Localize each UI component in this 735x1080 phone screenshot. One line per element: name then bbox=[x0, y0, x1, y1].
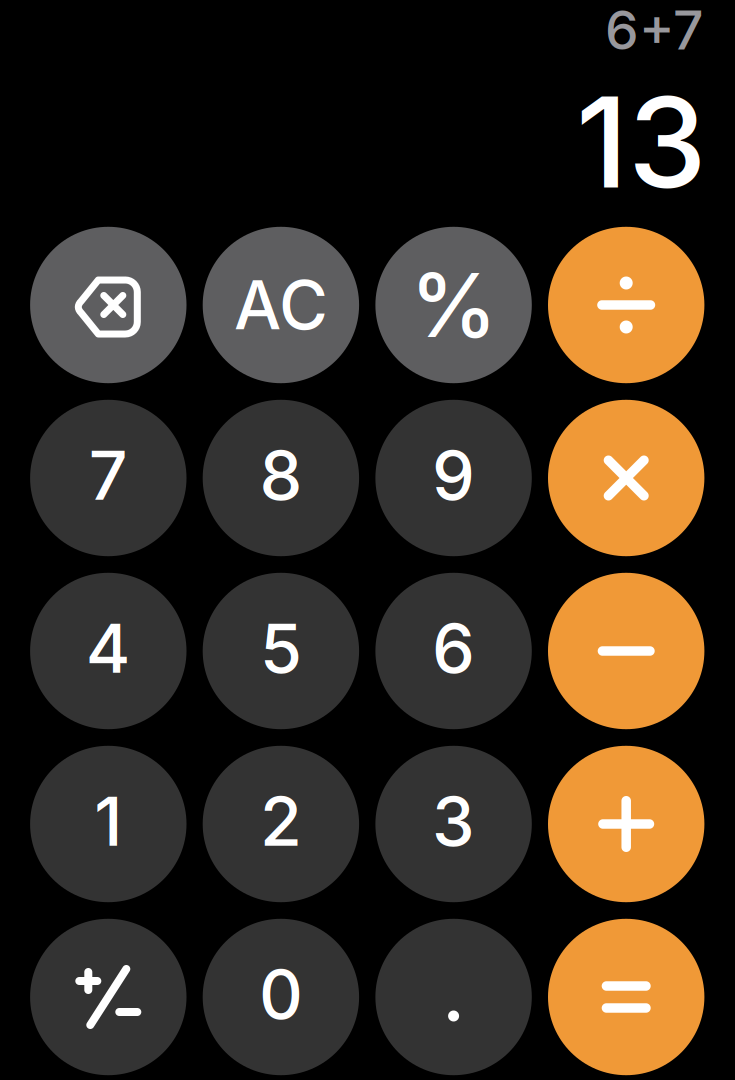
staticText: % bbox=[410, 252, 497, 358]
staticText: 13 bbox=[576, 66, 707, 218]
staticText: AC bbox=[234, 265, 328, 345]
button[interactable]: 7 bbox=[30, 400, 186, 556]
staticText: 1 bbox=[94, 780, 122, 862]
button[interactable]: Decimal point bbox=[375, 919, 532, 1075]
button[interactable]: 5 bbox=[203, 573, 359, 729]
staticText: 5 bbox=[260, 607, 302, 689]
staticText: 3 bbox=[432, 780, 475, 862]
staticText: 6+7 bbox=[605, 0, 703, 62]
button[interactable]: 8 bbox=[203, 400, 359, 556]
button[interactable]: Multiply bbox=[548, 400, 704, 556]
staticText: 8 bbox=[259, 434, 302, 516]
button[interactable]: 0 bbox=[203, 919, 359, 1075]
button[interactable]: % bbox=[375, 227, 532, 383]
button[interactable]: 6 bbox=[375, 573, 532, 729]
button[interactable]: Plus bbox=[548, 746, 704, 902]
button[interactable]: Divide bbox=[548, 227, 704, 383]
button[interactable]: AC bbox=[203, 227, 359, 383]
staticText: 9 bbox=[432, 434, 475, 516]
staticText: 2 bbox=[260, 780, 302, 862]
button[interactable]: Minus bbox=[548, 573, 704, 729]
button[interactable]: 2 bbox=[203, 746, 359, 902]
button[interactable]: 3 bbox=[375, 746, 532, 902]
button[interactable]: 1 bbox=[30, 746, 186, 902]
staticText: 4 bbox=[86, 607, 131, 689]
button[interactable]: 4 bbox=[30, 573, 186, 729]
staticText: 6 bbox=[432, 607, 475, 689]
staticText: 0 bbox=[259, 953, 303, 1035]
button[interactable]: Toggle sign bbox=[30, 919, 186, 1075]
button[interactable]: 9 bbox=[375, 400, 532, 556]
button[interactable]: Equals bbox=[548, 919, 704, 1075]
button[interactable]: Delete bbox=[30, 227, 186, 383]
staticText: 7 bbox=[89, 434, 128, 516]
